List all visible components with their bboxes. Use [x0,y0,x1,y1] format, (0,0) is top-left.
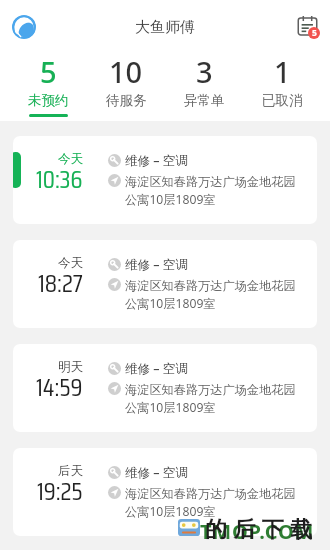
staticText: 10:36 [36,160,83,199]
staticText: 待服务 [106,92,147,109]
staticText: 10 [109,52,143,91]
staticText: 5 [40,52,57,91]
staticText: 维修 – 空调 [125,152,188,169]
staticText: 海淀区知春路万达广场金地花园公寓10层1809室 [125,486,300,519]
staticText: 海淀区知春路万达广场金地花园公寓10层1809室 [125,382,300,415]
staticText: TMOP.COM [200,518,315,545]
button[interactable]: 明天 [13,344,317,432]
staticText: 明天 [58,359,83,375]
staticText: 19:25 [37,472,83,511]
button[interactable]: 今天 [13,240,317,328]
staticText: 14:59 [36,368,83,407]
button[interactable]: 3 [165,52,243,117]
staticText: 5 [312,27,317,39]
staticText: 的后下载 [205,516,319,544]
staticText: 今天 [58,151,83,167]
button[interactable]: 10 [87,52,165,117]
button[interactable]: Profile [12,15,36,39]
button[interactable]: Orders [297,16,318,37]
staticText: 18:27 [38,264,83,303]
staticText: 维修 – 空调 [125,256,188,273]
staticText: 海淀区知春路万达广场金地花园公寓10层1809室 [125,278,300,311]
staticText: 异常单 [184,92,225,109]
staticText: 未预约 [28,92,69,109]
button[interactable]: 5 [10,52,87,117]
staticText: 今天 [58,255,83,271]
staticText: 海淀区知春路万达广场金地花园公寓10层1809室 [125,174,300,207]
button[interactable]: 后天 [13,448,317,536]
staticText: 已取消 [262,92,303,109]
button[interactable]: 今天 [13,136,317,224]
staticText: 后天 [58,463,83,479]
button[interactable]: 1 [243,52,321,117]
staticText: 大鱼师傅 [135,18,195,37]
staticText: 3 [196,52,213,91]
staticText: 维修 – 空调 [125,360,188,377]
staticText: 维修 – 空调 [125,464,188,481]
staticText: 1 [274,52,291,91]
